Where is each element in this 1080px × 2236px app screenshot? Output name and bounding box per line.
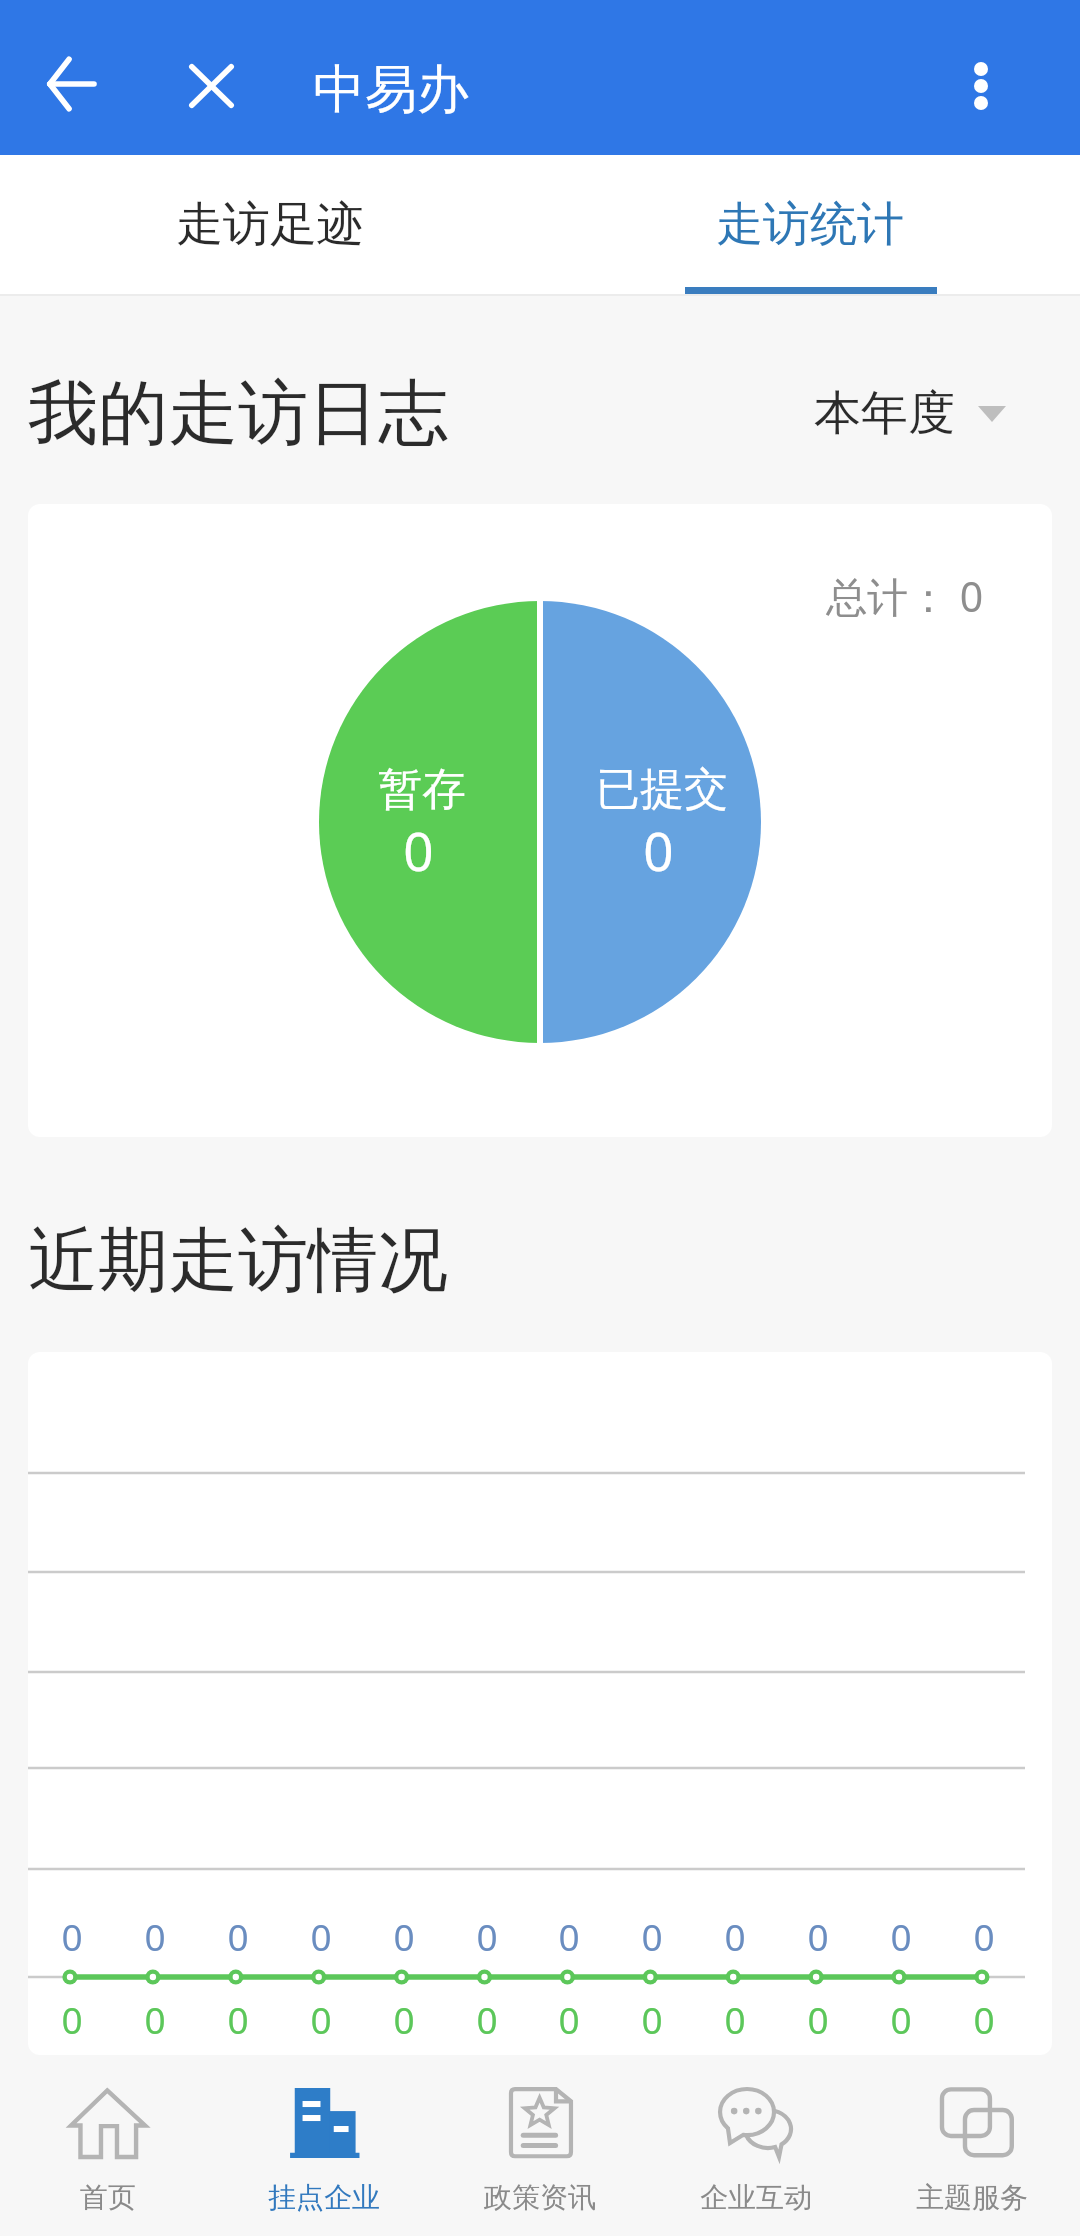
button[interactable]: Back <box>31 44 111 124</box>
button[interactable]: 政策资讯 <box>432 2055 648 2236</box>
button[interactable]: 主题服务 <box>864 2055 1080 2236</box>
staticText: 0 <box>890 1911 912 1961</box>
staticText: 0 <box>724 1911 746 1961</box>
button[interactable]: 挂点企业 <box>216 2055 432 2236</box>
staticText: 本年度 <box>814 384 955 443</box>
staticText: 主题服务 <box>916 2180 1028 2215</box>
staticText: 0 <box>61 1994 83 2044</box>
staticText: 0 <box>144 1911 166 1961</box>
staticText: 0 <box>144 1994 166 2044</box>
staticText: 走访足迹 <box>176 195 364 254</box>
staticText: 0 <box>641 1994 663 2044</box>
staticText: 0 <box>476 1994 498 2044</box>
staticText: 挂点企业 <box>268 2180 380 2215</box>
staticText: 0 <box>227 1911 249 1961</box>
staticText: 0 <box>890 1994 912 2044</box>
button[interactable]: Close <box>171 46 251 126</box>
staticText: 0 <box>310 1994 332 2044</box>
staticText: 政策资讯 <box>484 2180 596 2215</box>
staticText: 0 <box>807 1911 829 1961</box>
staticText: 近期走访情况 <box>28 1217 448 1305</box>
staticText: 我的走访日志 <box>28 370 448 458</box>
button[interactable]: 走访足迹 <box>0 155 540 296</box>
staticText: 0 <box>641 1911 663 1961</box>
button[interactable]: 首页 <box>0 2055 216 2236</box>
staticText: 0 <box>393 1911 415 1961</box>
staticText: 已提交 <box>596 762 728 817</box>
staticText: 0 <box>476 1911 498 1961</box>
staticText: 0 <box>643 814 674 886</box>
staticText: 0 <box>61 1911 83 1961</box>
staticText: 0 <box>724 1994 746 2044</box>
staticText: 0 <box>310 1911 332 1961</box>
staticText: 0 <box>227 1994 249 2044</box>
staticText: 0 <box>403 814 434 886</box>
staticText: 首页 <box>80 2180 136 2215</box>
staticText: 0 <box>973 1911 995 1961</box>
staticText: 0 <box>558 1911 580 1961</box>
staticText: 0 <box>558 1994 580 2044</box>
staticText: 暂存 <box>378 762 466 817</box>
button[interactable]: 走访统计 <box>540 155 1080 296</box>
staticText: 0 <box>393 1994 415 2044</box>
staticText: 中易办 <box>313 57 469 123</box>
button[interactable]: 企业互动 <box>648 2055 864 2236</box>
staticText: 0 <box>807 1994 829 2044</box>
staticText: 走访统计 <box>716 195 904 254</box>
staticText: 0 <box>973 1994 995 2044</box>
button[interactable]: More options <box>941 46 1021 126</box>
staticText: 总计： 0 <box>826 568 984 624</box>
button[interactable]: 本年度 <box>814 384 1006 443</box>
staticText: 企业互动 <box>700 2180 812 2215</box>
